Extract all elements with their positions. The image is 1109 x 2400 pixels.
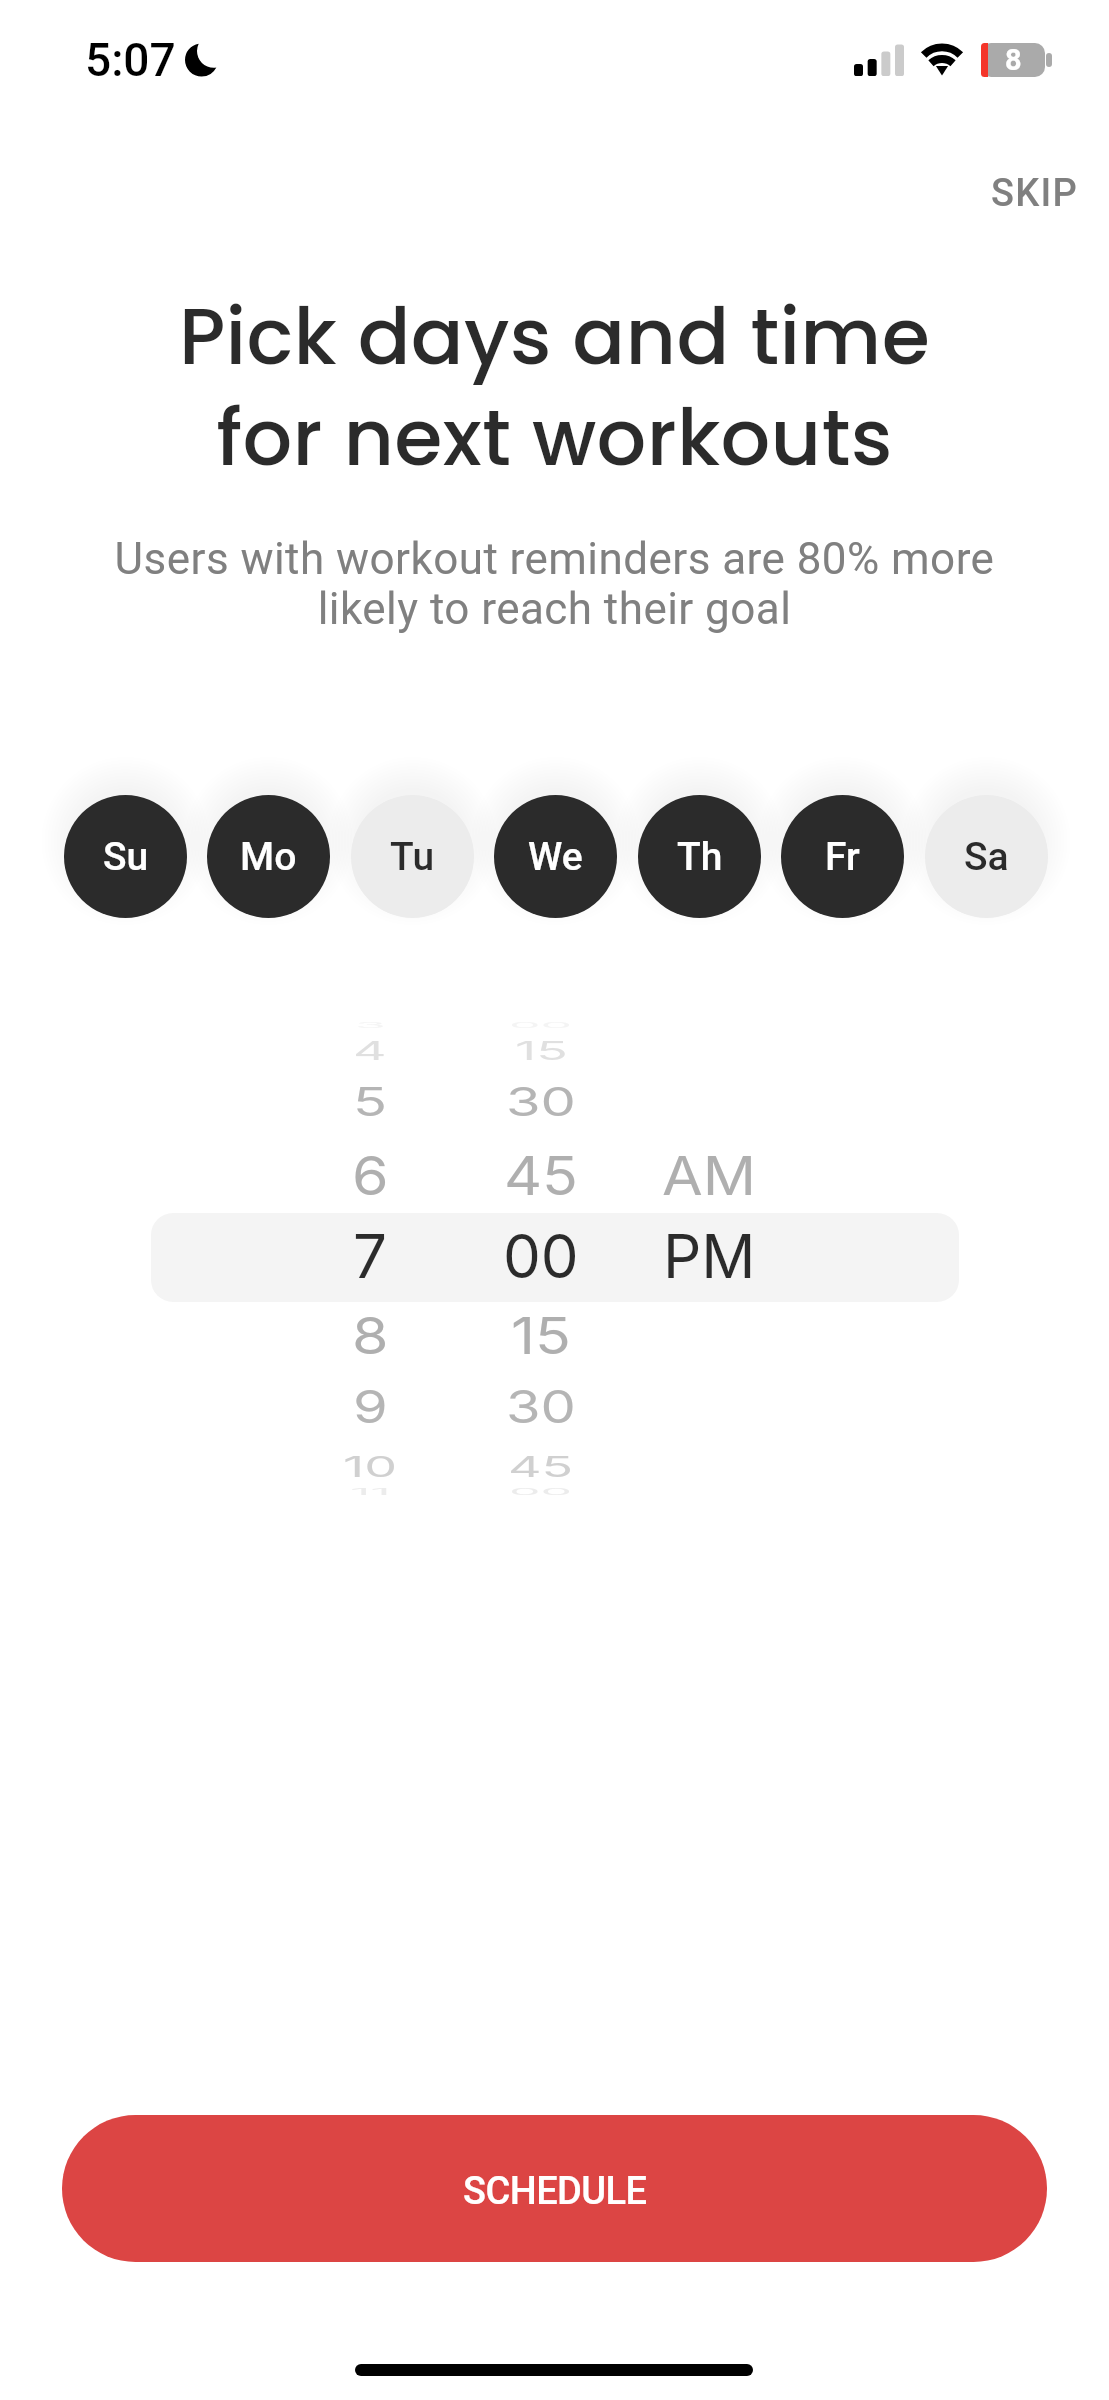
- staticText: 8: [352, 1305, 389, 1366]
- staticText: 11: [350, 1487, 391, 1497]
- button[interactable]: We: [494, 795, 617, 918]
- staticText: 00: [503, 1220, 579, 1293]
- staticText: 15: [511, 1305, 571, 1366]
- button[interactable]: Th: [638, 795, 761, 918]
- other: Wi-Fi: [920, 42, 964, 76]
- button[interactable]: SKIP: [991, 152, 1109, 234]
- staticText: 30: [506, 1078, 576, 1126]
- staticText: AM: [662, 1143, 757, 1207]
- staticText: 4: [353, 1036, 387, 1067]
- staticText: 15: [515, 1036, 568, 1067]
- button[interactable]: Fr: [781, 795, 904, 918]
- staticText: Pick days and time for next workouts: [0, 282, 1109, 493]
- staticText: 9: [353, 1380, 388, 1434]
- staticText: 3: [355, 1020, 386, 1029]
- staticText: Users with workout reminders are 80% mor…: [0, 533, 1109, 635]
- button[interactable]: Mo: [207, 795, 330, 918]
- staticText: Sa: [964, 834, 1009, 880]
- staticText: 45: [508, 1450, 574, 1484]
- staticText: 45: [504, 1143, 578, 1207]
- staticText: Mo: [240, 834, 297, 880]
- staticText: 8: [1005, 43, 1022, 77]
- staticText: 5: [353, 1078, 388, 1126]
- staticText: 30: [506, 1380, 576, 1434]
- staticText: PM: [663, 1220, 756, 1293]
- staticText: SCHEDULE: [463, 2169, 647, 2214]
- staticText: 00: [509, 1487, 573, 1497]
- staticText: 10: [343, 1450, 397, 1484]
- staticText: 00: [509, 1020, 573, 1029]
- other: Do not disturb: [185, 43, 221, 77]
- staticText: Tu: [390, 834, 435, 880]
- staticText: Th: [677, 834, 723, 880]
- staticText: 5:07: [85, 33, 176, 87]
- staticText: 6: [352, 1143, 389, 1207]
- staticText: Fr: [825, 834, 860, 880]
- button[interactable]: Sa: [925, 795, 1048, 918]
- button[interactable]: Tu: [351, 795, 474, 918]
- staticText: SKIP: [991, 171, 1079, 216]
- staticText: We: [528, 834, 583, 880]
- staticText: 7: [353, 1220, 387, 1293]
- button[interactable]: SCHEDULE: [62, 2115, 1047, 2262]
- button[interactable]: Su: [64, 795, 187, 918]
- staticText: Su: [103, 834, 149, 880]
